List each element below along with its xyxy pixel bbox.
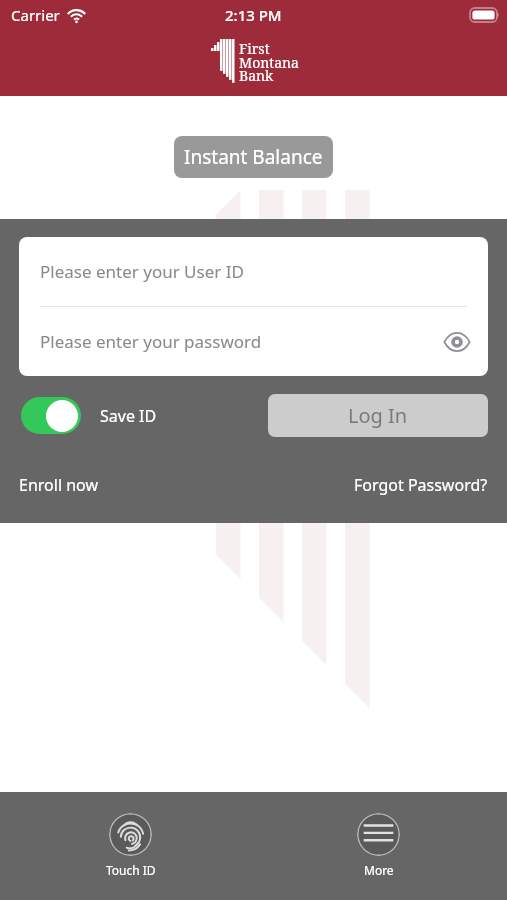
staticText: Log In <box>348 402 408 429</box>
button[interactable]: Show password <box>441 326 473 358</box>
staticText: 2:13 PM <box>225 5 282 25</box>
staticText: Please enter your User ID <box>40 260 244 283</box>
staticText: Touch ID <box>106 862 156 878</box>
staticText: First <box>239 39 270 58</box>
staticText: Enroll now <box>19 474 98 496</box>
button[interactable]: Instant Balance <box>174 136 333 178</box>
button[interactable]: Touch ID <box>95 813 166 878</box>
button[interactable]: More <box>343 813 414 878</box>
button[interactable]: Log In <box>268 394 488 437</box>
staticText: Carrier <box>11 5 60 25</box>
staticText: Save ID <box>100 405 157 427</box>
staticText: Bank <box>239 66 274 85</box>
button[interactable]: Save ID <box>21 397 157 434</box>
staticText: Please enter your password <box>40 330 262 353</box>
button[interactable]: Enroll now <box>19 474 98 496</box>
button[interactable]: Please enter your User ID <box>19 237 488 306</box>
staticText: Forgot Password? <box>354 474 488 496</box>
staticText: More <box>364 862 394 878</box>
button[interactable]: Forgot Password? <box>354 474 488 496</box>
staticText: Montana <box>239 53 299 72</box>
staticText: Instant Balance <box>184 144 323 170</box>
button[interactable]: Please enter your password <box>19 307 488 376</box>
